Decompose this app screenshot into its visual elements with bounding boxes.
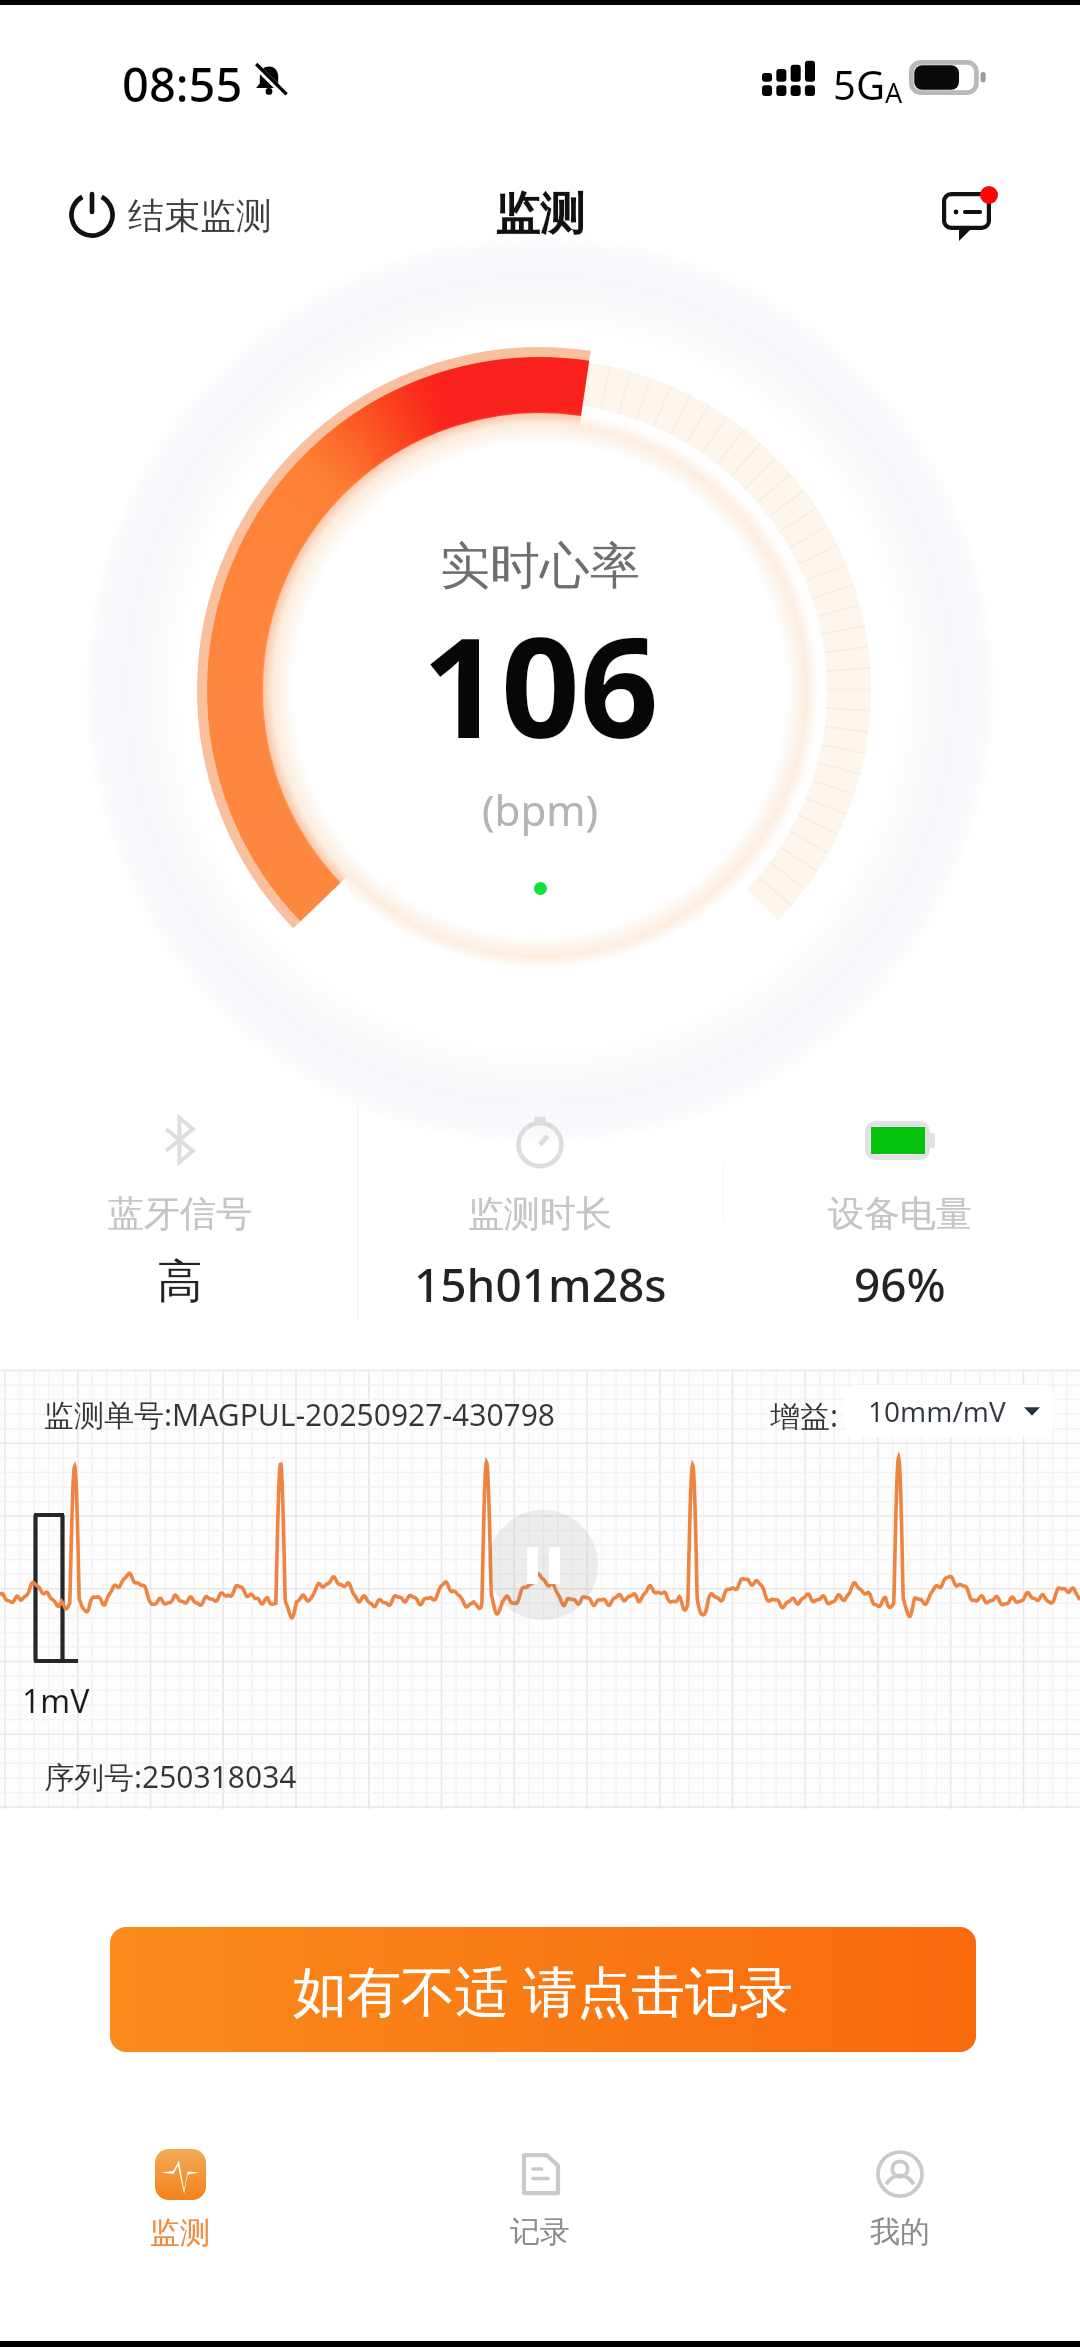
- staticText: 96%: [854, 1253, 946, 1316]
- staticText: 蓝牙信号: [108, 1191, 252, 1236]
- staticText: 1mV: [22, 1679, 90, 1723]
- button[interactable]: Messages: [924, 174, 1008, 258]
- staticText: 设备电量: [828, 1191, 972, 1236]
- staticText: 如有不适 请点击记录: [293, 1953, 794, 2027]
- staticText: 5G: [833, 57, 885, 111]
- staticText: 增益:: [770, 1395, 839, 1436]
- staticText: A: [885, 74, 903, 111]
- staticText: 我的: [870, 2213, 930, 2251]
- button[interactable]: Pause: [488, 1510, 598, 1620]
- button[interactable]: 结束监测: [60, 183, 278, 247]
- button[interactable]: 如有不适 请点击记录: [110, 1927, 976, 2052]
- staticText: 序列号:250318034: [44, 1756, 297, 1797]
- staticText: 10mm/mV: [868, 1392, 1006, 1430]
- staticText: 监测: [150, 2214, 210, 2252]
- staticText: 监测: [495, 186, 585, 243]
- staticText: 15h01m28s: [414, 1253, 667, 1316]
- staticText: 结束监测: [128, 193, 272, 238]
- staticText: 实时心率: [440, 535, 640, 598]
- button[interactable]: 10mm/mV: [845, 1385, 1053, 1437]
- button[interactable]: 记录: [360, 2134, 720, 2259]
- staticText: 高: [157, 1253, 203, 1311]
- staticText: 106: [422, 590, 659, 778]
- staticText: 监测单号:MAGPUL-20250927-430798: [44, 1394, 556, 1435]
- button[interactable]: 监测: [0, 2134, 360, 2259]
- staticText: 记录: [510, 2213, 570, 2251]
- button[interactable]: 我的: [720, 2134, 1080, 2259]
- staticText: (bpm): [482, 781, 599, 838]
- staticText: 08:55: [122, 52, 243, 116]
- staticText: 监测时长: [468, 1191, 612, 1236]
